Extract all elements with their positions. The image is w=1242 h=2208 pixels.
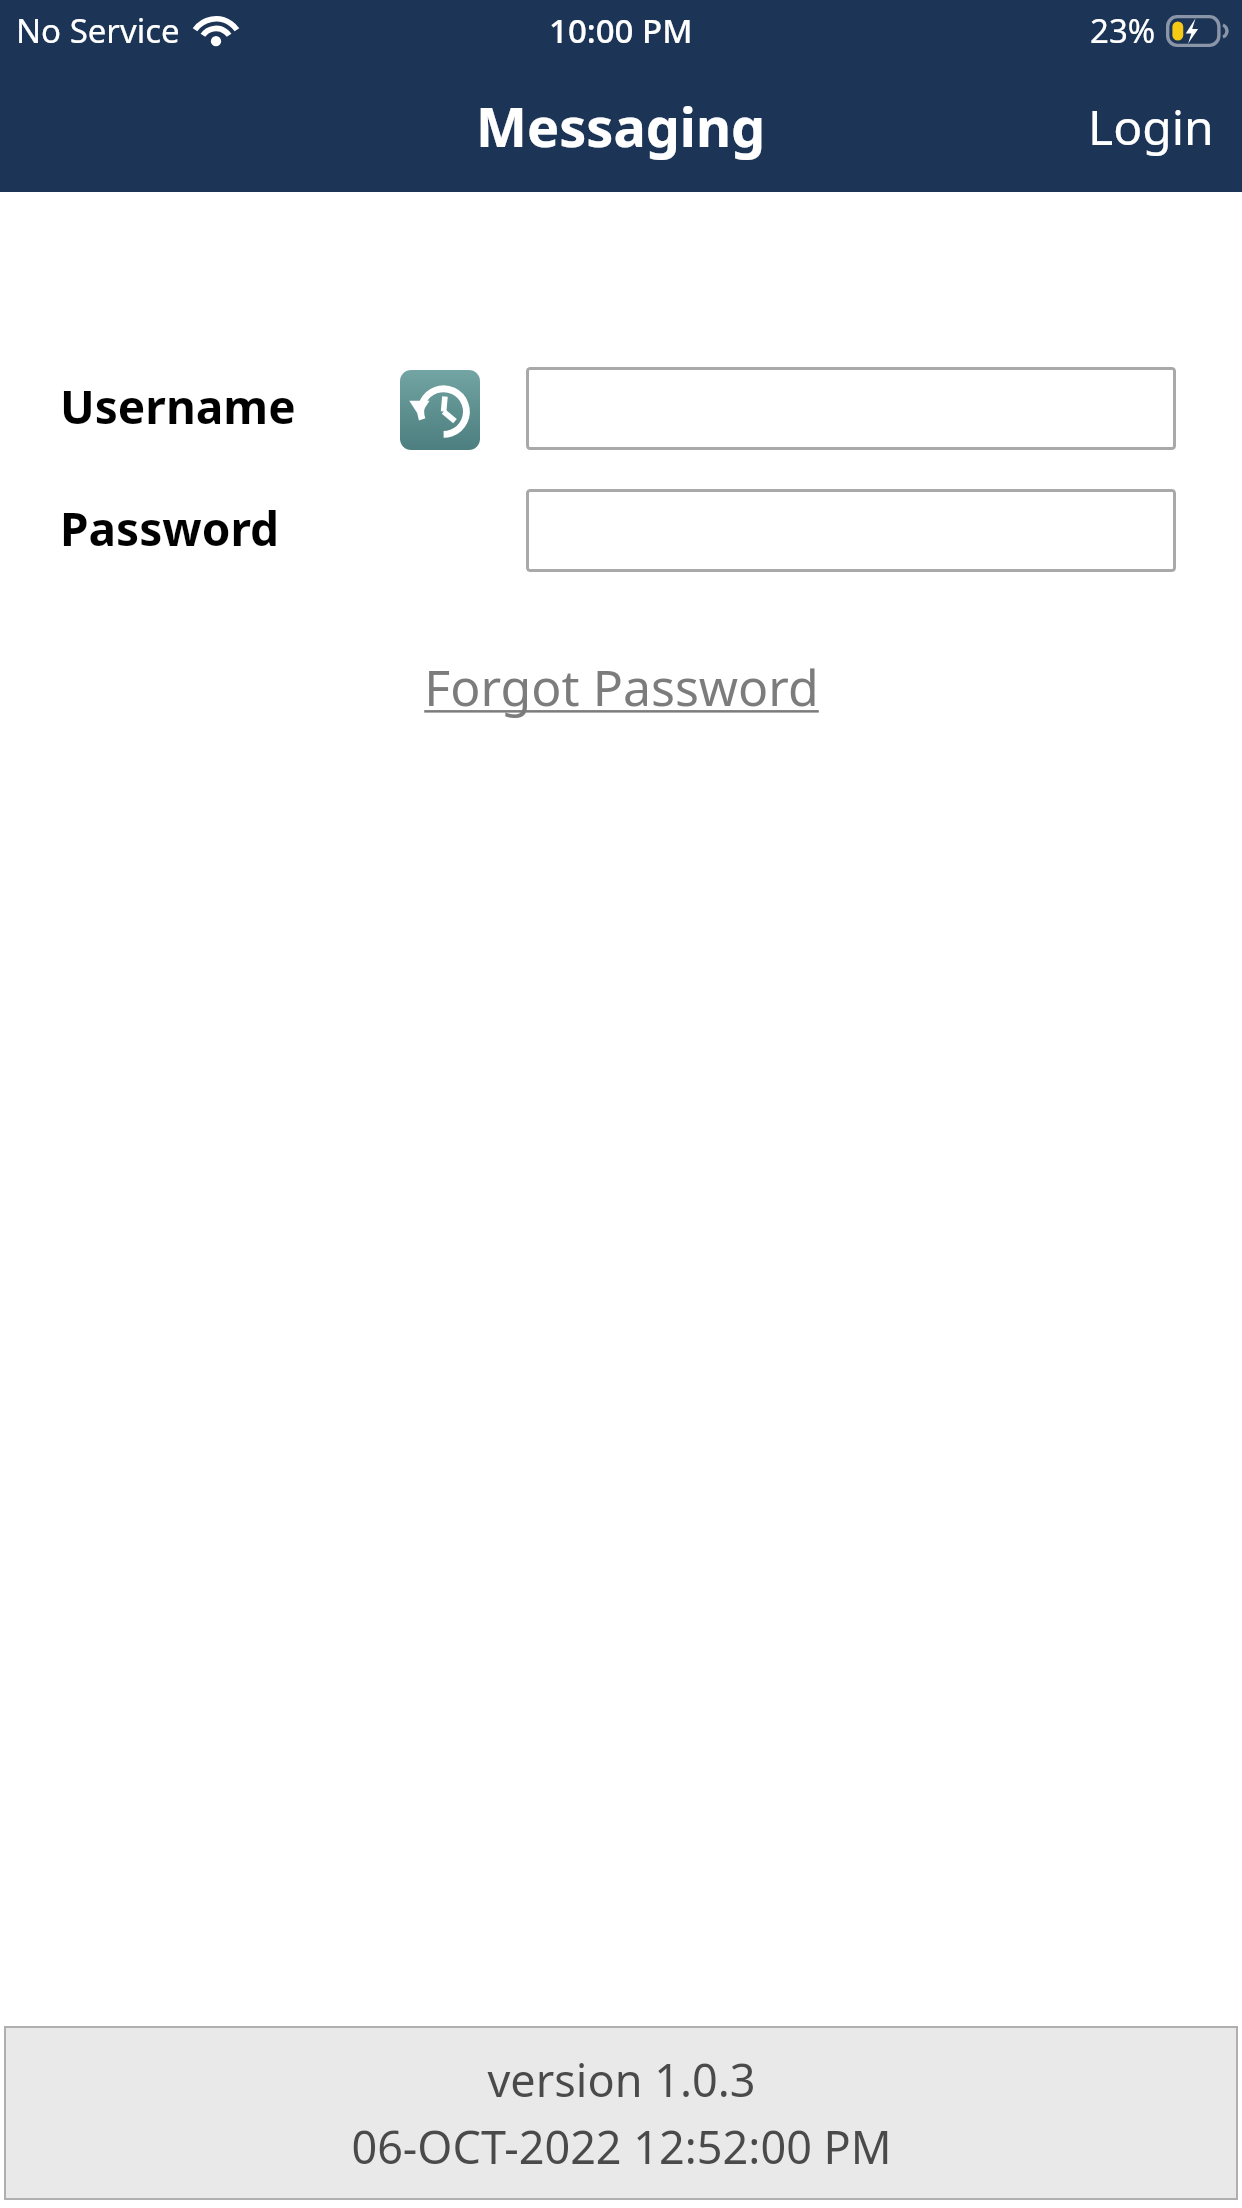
staticText: Password xyxy=(60,497,280,560)
staticText: 23% xyxy=(1090,8,1156,53)
button[interactable] xyxy=(526,367,1176,450)
button[interactable] xyxy=(526,489,1176,572)
button[interactable]: Login xyxy=(1060,76,1242,177)
staticText: Login xyxy=(1088,94,1214,159)
button[interactable]: History xyxy=(400,370,480,450)
staticText: 06-OCT-2022 12:52:00 PM xyxy=(351,2116,892,2177)
staticText: Forgot Password xyxy=(424,653,819,721)
staticText: 10:00 PM xyxy=(549,8,693,53)
staticText: version 1.0.3 xyxy=(487,2049,756,2110)
staticText: Messaging xyxy=(476,89,766,163)
staticText: No Service xyxy=(16,8,180,53)
staticText: Username xyxy=(60,375,296,438)
button[interactable]: Forgot Password xyxy=(414,647,829,727)
